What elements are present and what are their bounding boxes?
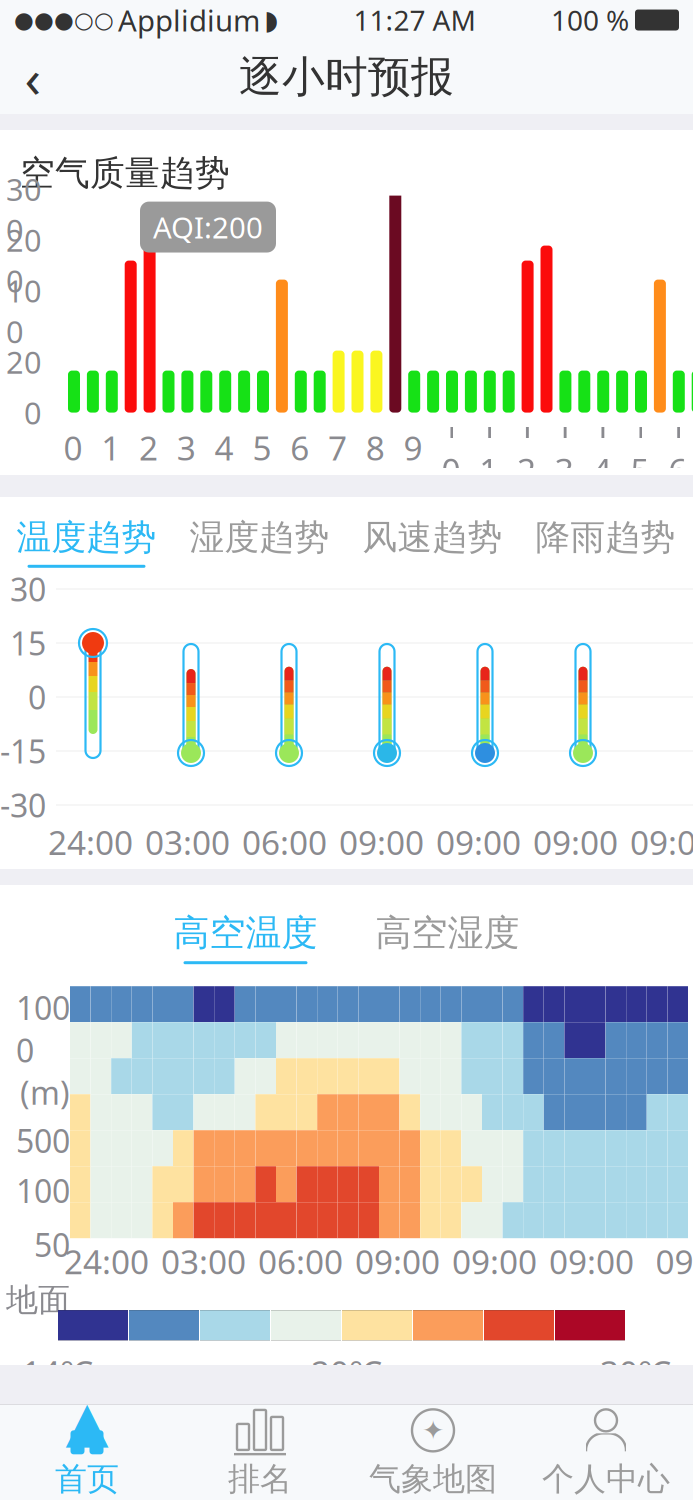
staticText: ◗ [264,5,278,35]
staticText: 03:00 [161,1239,246,1283]
staticText: ▲ [65,1390,108,1453]
button[interactable]: ✦ [346,1404,519,1500]
staticText: 1 [101,425,120,470]
staticText: 9 [404,425,423,470]
staticText: 高空温度 [173,911,317,955]
staticText: 11 [479,403,498,492]
staticText: 03:00 [145,820,230,864]
staticText: 300 [6,169,42,250]
staticText: 0 [63,425,82,470]
staticText: 5 [252,425,271,470]
staticText: 24:00 [48,820,133,864]
staticText: ‹ [24,42,41,112]
staticText: 14 [593,403,612,492]
staticText: 0 [28,676,46,718]
button[interactable]: 高空温度 [173,911,317,964]
staticText: 高空湿度 [375,911,519,955]
staticText: 09:00 [355,1239,440,1283]
staticText: 24:00 [64,1239,149,1283]
staticText: 15 [630,403,649,492]
staticText: 11:27 AM [353,1,475,39]
staticText: (m) [20,1071,70,1114]
staticText: 06:00 [242,820,327,864]
staticText: 06:00 [258,1239,343,1283]
staticText: 09:00 [630,820,693,864]
staticText: 200 [6,220,42,301]
button[interactable]: 温度趋势 [0,511,173,573]
staticText: 2 [139,425,158,470]
staticText: 09:00 [533,820,618,864]
staticText: 逐小时预报 [239,51,454,103]
staticText: 6 [290,425,309,470]
staticText: 100 [16,1169,70,1212]
staticText: 空气质量趋势 [20,152,230,195]
button[interactable]: ▲ [0,1404,173,1500]
staticText: 09:0 [655,1239,693,1283]
staticText: 100 % [551,1,629,39]
staticText: 0 [24,392,42,433]
staticText: Applidium [118,0,260,39]
staticText: 地面 [6,1280,70,1320]
staticText: ●●●○○ [14,7,114,33]
staticText: ✦ [422,1415,444,1445]
staticText: 20℃ [311,1350,382,1394]
button[interactable]: Back [0,40,66,114]
staticText: 09:00 [436,820,521,864]
staticText: 100 [6,270,42,352]
staticText: 4 [215,425,234,470]
button[interactable]: 降雨趋势 [519,511,692,573]
staticText: 500 [16,1119,70,1162]
button[interactable]: 排名 [173,1404,346,1500]
staticText: 首页 [55,1459,119,1499]
staticText: 湿度趋势 [189,516,329,559]
staticText: 1000 [16,986,70,1071]
staticText: 30℃ [600,1350,671,1394]
staticText: 15 [10,622,46,664]
staticText: 12 [517,403,536,492]
button[interactable]: 个人中心 [519,1404,692,1500]
staticText: 8 [366,425,385,470]
button[interactable]: 风速趋势 [346,511,519,573]
button[interactable]: 湿度趋势 [173,511,346,573]
staticText: 20 [6,341,42,382]
staticText: 降雨趋势 [535,516,675,559]
staticText: 50 [34,1223,70,1266]
staticText: 温度趋势 [16,516,156,559]
staticText: -30 [0,784,46,826]
staticText: -15 [0,730,46,772]
staticText: 30 [10,568,46,610]
staticText: 7 [328,425,347,470]
staticText: 13 [555,403,574,492]
staticText: 10 [441,403,460,492]
staticText: 排名 [228,1459,292,1499]
staticText: 14℃ [22,1350,93,1394]
button[interactable]: 高空湿度 [375,911,519,964]
staticText: 09:00 [339,820,424,864]
staticText: 16 [668,403,687,492]
staticText: 个人中心 [542,1459,670,1499]
staticText: AQI:200 [153,208,263,247]
staticText: 风速趋势 [362,516,502,559]
staticText: 09:00 [549,1239,634,1283]
staticText: 09:00 [452,1239,537,1283]
staticText: 气象地图 [369,1459,497,1499]
staticText: 3 [177,425,196,470]
